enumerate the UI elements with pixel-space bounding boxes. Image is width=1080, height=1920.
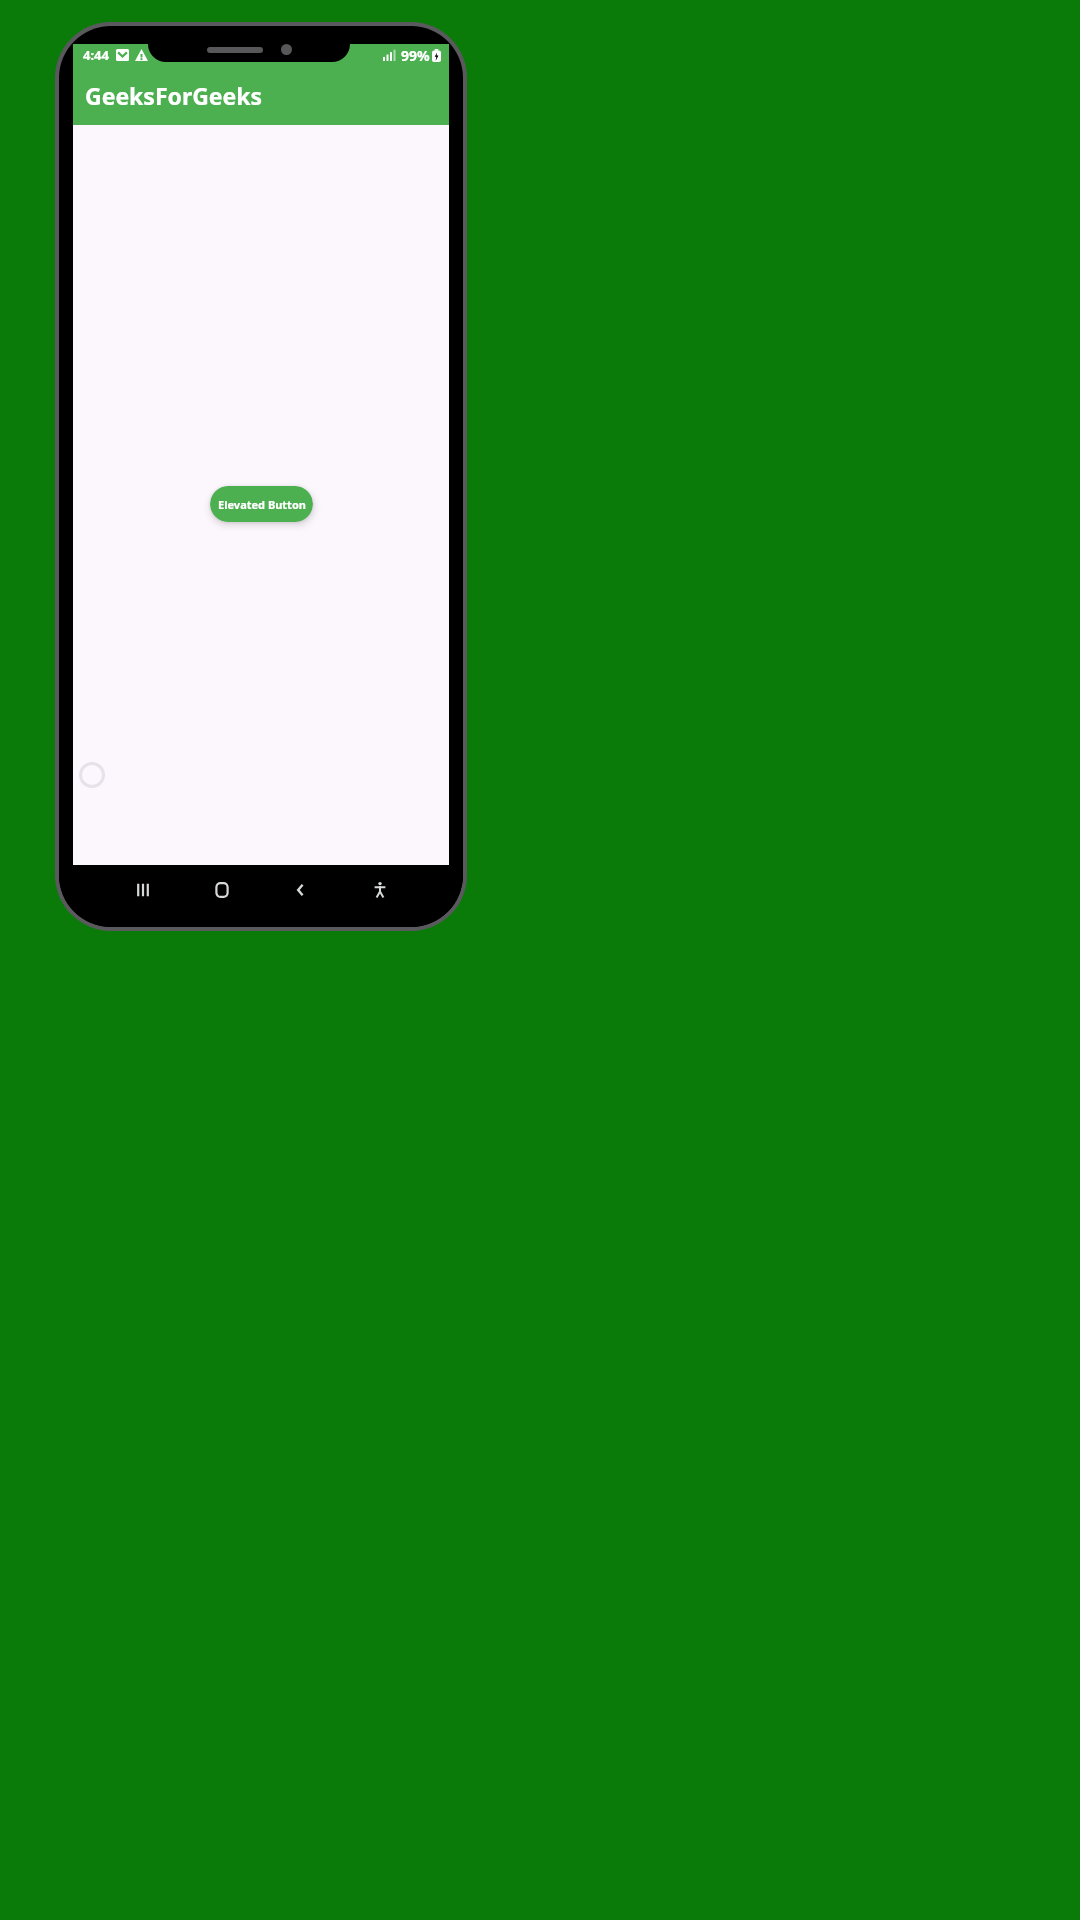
button[interactable]: Elevated Button: [210, 486, 313, 522]
button[interactable]: Back: [261, 865, 340, 915]
staticText: Elevated Button: [218, 497, 306, 512]
staticText: 99%: [401, 46, 430, 65]
button[interactable]: Accessibility: [340, 865, 419, 915]
button[interactable]: Recents: [103, 865, 182, 915]
button[interactable]: Home: [182, 865, 261, 915]
staticText: GeeksForGeeks: [85, 80, 263, 111]
staticText: 4:44: [83, 46, 109, 64]
